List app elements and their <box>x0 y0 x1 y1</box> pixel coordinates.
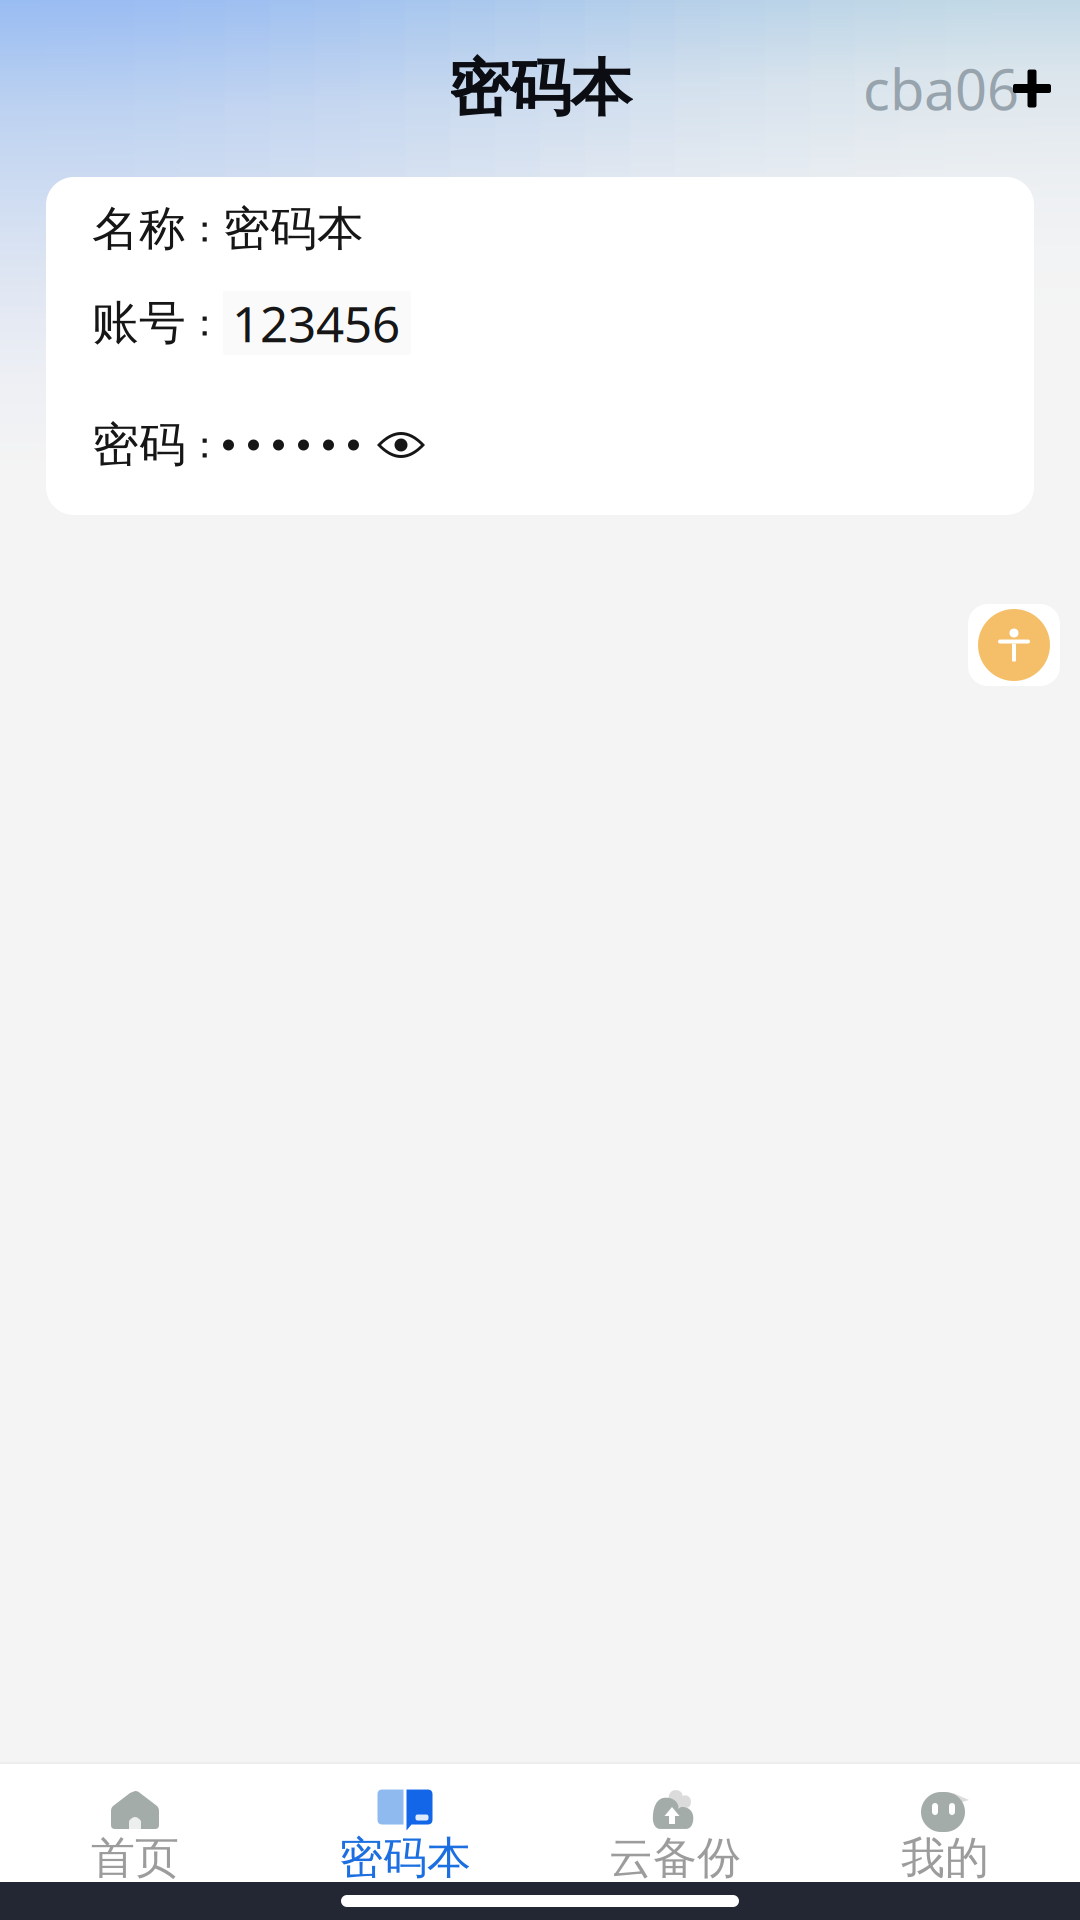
staticText: 密码本 <box>223 200 364 258</box>
button[interactable]: 我的 <box>810 1764 1080 1882</box>
button[interactable]: 云备份 <box>540 1764 810 1882</box>
staticText: 密码本 <box>339 1831 471 1885</box>
staticText: 123456 <box>232 290 400 356</box>
button[interactable]: Add <box>1001 53 1063 123</box>
staticText: cba06 <box>863 51 1019 126</box>
staticText: ： <box>186 300 223 346</box>
staticText: 首页 <box>91 1831 179 1885</box>
staticText: 名称 <box>92 200 186 258</box>
staticText: 云备份 <box>609 1831 741 1885</box>
button[interactable]: Accessibility <box>968 604 1060 686</box>
button[interactable]: 首页 <box>0 1764 270 1882</box>
staticText: ： <box>186 206 223 252</box>
button[interactable]: Show password <box>359 425 435 465</box>
staticText: 我的 <box>901 1831 989 1885</box>
staticText: ： <box>186 422 223 468</box>
staticText: 密码本 <box>448 51 631 126</box>
staticText: 账号 <box>92 294 186 352</box>
button[interactable]: 密码本 <box>270 1764 540 1882</box>
staticText: 密码 <box>92 416 186 474</box>
